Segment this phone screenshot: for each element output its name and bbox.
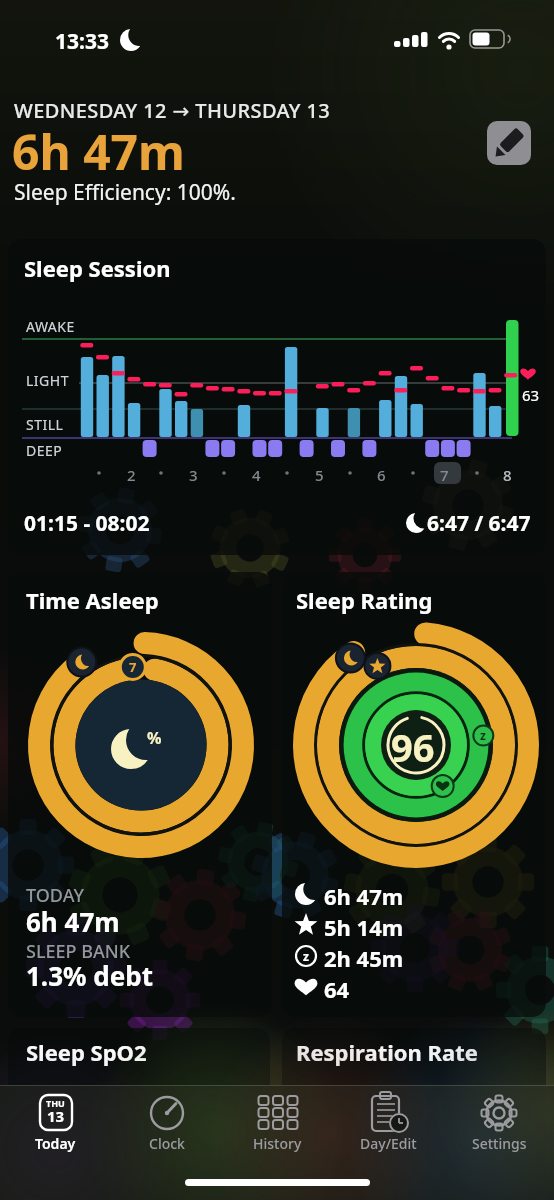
staticText: 13:33 [55,27,109,56]
button[interactable]: Respiration Rate [282,1028,546,1200]
button[interactable]: THU [0,1085,111,1160]
staticText: 6h 47m [26,904,120,939]
staticText: Respiration Rate [296,1037,478,1067]
staticText: 6 [377,465,386,485]
staticText: z [303,948,309,964]
staticText: 6h 47m [12,119,185,184]
button[interactable] [487,121,531,165]
staticText: 5 [315,465,324,485]
staticText: 4 [252,465,261,485]
staticText: Sleep Rating [296,585,433,615]
staticText: 6h 47m [324,881,404,911]
staticText: History [253,1134,302,1153]
staticText: 8 [503,465,512,485]
button[interactable]: Clock [111,1085,222,1160]
staticText: TODAY [26,883,84,908]
staticText: Clock [149,1134,185,1153]
staticText: 5h 14m [324,912,404,942]
staticText: AWAKE [26,317,75,336]
button[interactable]: Sleep Rating [282,572,546,1017]
staticText: Today [35,1134,76,1153]
staticText: 2 [127,465,136,485]
button[interactable]: Sleep Session [8,239,546,555]
staticText: 63 [522,385,540,405]
staticText: 3 [189,465,198,485]
staticText: 13 [47,1106,65,1126]
staticText: Sleep Efficiency: 100%. [14,178,236,207]
staticText: 1.3% debt [26,958,153,993]
staticText: Settings [472,1134,527,1153]
staticText: SLEEP BANK [26,939,131,964]
staticText: Sleep SpO2 [26,1037,147,1067]
staticText: Day/Edit [360,1134,417,1153]
staticText: 2h 45m [324,943,404,973]
staticText: DEEP [26,441,63,460]
staticText: 7 [129,658,137,676]
staticText: 96 [391,721,435,773]
staticText: 7 [440,465,449,485]
staticText: % [147,727,162,749]
button[interactable]: History [222,1085,333,1160]
staticText: 64 [324,974,350,1004]
button[interactable]: Time Asleep [8,572,272,1017]
staticText: Sleep Session [24,253,171,283]
button[interactable]: Day/Edit [333,1085,444,1160]
button[interactable]: Settings [444,1085,554,1160]
button[interactable]: Sleep SpO2 [8,1028,270,1200]
staticText: STILL [26,415,64,434]
staticText: WEDNESDAY 12 → THURSDAY 13 [14,97,331,124]
staticText: LIGHT [26,371,69,390]
staticText: z [480,727,486,743]
staticText: 6:47 / 6:47 [427,509,531,538]
staticText: THU [46,1097,65,1109]
staticText: Time Asleep [26,585,159,615]
staticText: 01:15 - 08:02 [24,509,150,538]
